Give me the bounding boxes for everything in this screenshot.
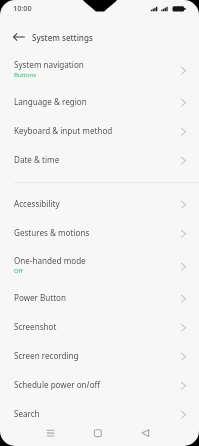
button[interactable]: Home: [74, 426, 122, 446]
staticText: 10:00: [13, 3, 32, 13]
staticText: Gestures & motions: [14, 227, 90, 238]
staticText: Buttons: [14, 71, 37, 79]
button[interactable]: Language & region: [0, 87, 199, 116]
button[interactable]: Date & time: [0, 145, 199, 174]
button[interactable]: Accessibility: [0, 189, 199, 218]
button[interactable]: Screenshot: [0, 312, 199, 341]
staticText: Screenshot: [14, 321, 57, 332]
button[interactable]: Recent apps: [0, 426, 74, 446]
staticText: Power Button: [14, 292, 67, 303]
staticText: System navigation: [14, 59, 84, 70]
button[interactable]: Search: [0, 399, 199, 428]
button[interactable]: Back: [7, 25, 31, 49]
staticText: One-handed mode: [14, 255, 86, 266]
button[interactable]: Screen recording: [0, 341, 199, 370]
button[interactable]: Schedule power on/off: [0, 370, 199, 399]
staticText: Off: [14, 267, 23, 275]
button[interactable]: Power Button: [0, 283, 199, 312]
button[interactable]: Gestures & motions: [0, 218, 199, 247]
staticText: Schedule power on/off: [14, 379, 101, 390]
staticText: Search: [14, 408, 40, 419]
button[interactable]: Keyboard & input method: [0, 116, 199, 145]
staticText: Screen recording: [14, 350, 79, 361]
staticText: Date & time: [14, 154, 60, 165]
staticText: Language & region: [14, 96, 87, 107]
staticText: Accessibility: [14, 198, 60, 209]
staticText: System settings: [32, 32, 93, 43]
button[interactable]: One-handed mode: [0, 247, 199, 283]
button[interactable]: System navigation: [0, 51, 199, 87]
button[interactable]: Back: [122, 426, 199, 446]
staticText: Keyboard & input method: [14, 125, 113, 136]
